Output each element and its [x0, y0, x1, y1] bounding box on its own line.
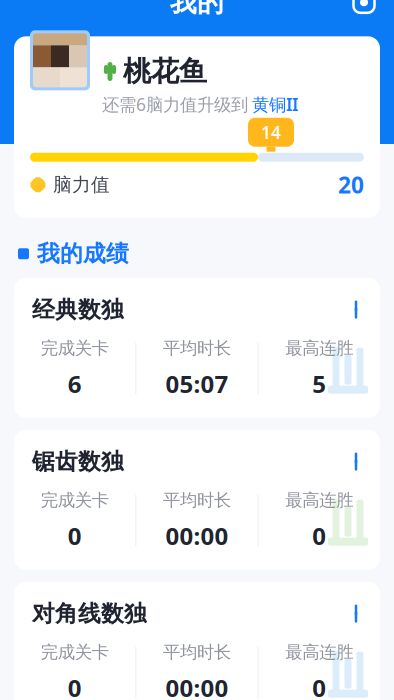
- staticText: 14: [261, 121, 281, 144]
- staticText: 05:07: [165, 368, 228, 400]
- staticText: 最高连胜: [285, 489, 353, 511]
- button[interactable]: 经典数独: [14, 278, 380, 418]
- staticText: 桃花鱼: [123, 54, 207, 89]
- staticText: 完成关卡: [41, 641, 109, 663]
- staticText: 0: [312, 672, 326, 700]
- staticText: 0: [68, 520, 82, 552]
- staticText: 0: [312, 520, 326, 552]
- staticText: 对角线数独: [32, 600, 147, 627]
- button[interactable]: 对角线数独: [14, 582, 380, 700]
- staticText: 00:00: [165, 520, 228, 552]
- staticText: 6: [68, 368, 82, 400]
- staticText: 0: [68, 672, 82, 700]
- staticText: 5: [312, 368, 326, 400]
- staticText: 经典数独: [32, 296, 124, 323]
- staticText: 完成关卡: [41, 337, 109, 359]
- staticText: 黄铜II: [252, 93, 298, 116]
- staticText: 锯齿数独: [32, 448, 124, 475]
- staticText: 还需6脑力值升级到: [102, 93, 248, 116]
- staticText: 最高连胜: [285, 337, 353, 359]
- staticText: 00:00: [165, 672, 228, 700]
- staticText: 我的成绩: [37, 240, 129, 268]
- button[interactable]: 锯齿数独: [14, 430, 380, 570]
- staticText: 我的: [170, 0, 224, 19]
- staticText: 脑力值: [53, 173, 110, 196]
- staticText: 最高连胜: [285, 641, 353, 663]
- staticText: 平均时长: [163, 641, 231, 663]
- staticText: 20: [338, 170, 364, 200]
- staticText: 平均时长: [163, 489, 231, 511]
- staticText: 平均时长: [163, 337, 231, 359]
- staticText: 完成关卡: [41, 489, 109, 511]
- button[interactable]: 设置: [342, 0, 386, 24]
